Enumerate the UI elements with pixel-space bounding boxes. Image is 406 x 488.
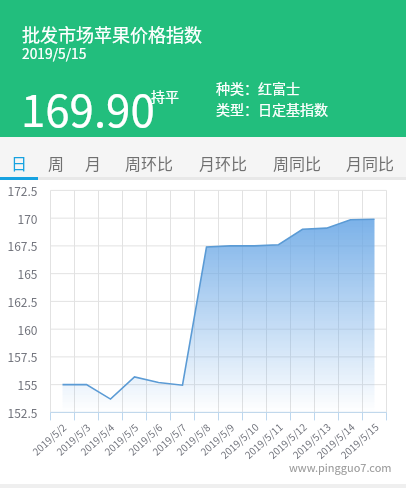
staticText: 批发市场苹果价格指数 [22, 21, 202, 47]
other: 批发市场苹果价格指数折线图 [0, 180, 406, 484]
staticText: 月 [85, 151, 102, 174]
button[interactable]: 月 [75, 137, 112, 180]
staticText: 种类：红富士 [216, 78, 300, 98]
button[interactable]: 周环比 [112, 137, 187, 180]
staticText: 周同比 [273, 151, 322, 174]
staticText: 169.90 [21, 76, 155, 139]
button[interactable]: 月环比 [187, 137, 260, 180]
staticText: 周 [48, 151, 65, 174]
staticText: 周环比 [125, 151, 174, 174]
staticText: 类型：日定基指数 [216, 99, 328, 119]
button[interactable]: 周 [38, 137, 75, 180]
staticText: 月同比 [346, 151, 395, 174]
button[interactable]: 日 [0, 137, 38, 180]
button[interactable]: 周同比 [260, 137, 334, 180]
staticText: 月环比 [199, 151, 248, 174]
staticText: 日 [11, 151, 28, 174]
staticText: 2019/5/15 [22, 43, 87, 63]
button[interactable]: 月同比 [334, 137, 406, 180]
staticText: 持平 [151, 86, 179, 106]
